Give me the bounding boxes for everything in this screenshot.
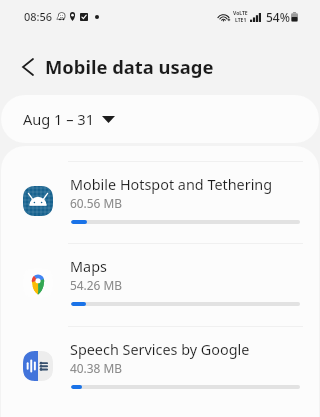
staticText: 54.26 MB [70,277,122,293]
staticText: 08:56 [24,9,53,24]
staticText: Aug 1 – 31 [23,109,95,129]
button[interactable]: Mobile Hotspot and Tethering [1,161,319,243]
staticText: Mobile Hotspot and Tethering [70,175,273,195]
button[interactable]: Back [0,43,45,91]
button[interactable]: Aug 1 – 31 [1,95,319,143]
staticText: VoLTE [233,10,248,17]
button[interactable]: Maps [1,243,319,325]
staticText: 40.38 MB [70,360,122,376]
staticText: 60.56 MB [70,195,122,211]
staticText: LTE1 [235,17,247,24]
staticText: Maps [70,257,107,277]
staticText: Mobile data usage [45,54,214,79]
staticText: Speech Services by Google [70,340,250,360]
staticText: 54% [266,9,290,25]
button[interactable]: Speech Services by Google [1,326,319,408]
